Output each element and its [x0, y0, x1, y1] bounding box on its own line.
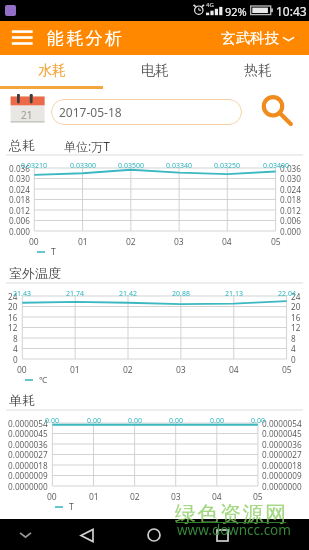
staticText: 00 [17, 364, 27, 375]
staticText: 0.00 [251, 416, 265, 425]
staticText: 0.0000000 [8, 481, 48, 492]
staticText: 21.74 [66, 289, 84, 298]
staticText: 4 [291, 343, 296, 354]
staticText: 0.00 [169, 416, 183, 425]
staticText: 0.03210 [21, 161, 47, 170]
staticText: 12 [8, 322, 18, 333]
staticText: 0.006 [280, 215, 301, 226]
staticText: 0.0000009 [262, 470, 302, 481]
staticText: 05 [282, 364, 292, 375]
staticText: 电耗 [141, 62, 169, 80]
staticText: 01 [89, 491, 99, 502]
staticText: 04 [212, 491, 222, 502]
staticText: 热耗 [244, 62, 272, 80]
staticText: 0.030 [280, 173, 301, 184]
staticText: 能耗分析 [47, 28, 125, 49]
staticText: 05 [271, 236, 281, 247]
staticText: 2017-05-18 [59, 104, 122, 120]
staticText: 02 [123, 364, 133, 375]
staticText: 04 [229, 364, 239, 375]
staticText: 单耗 [9, 392, 35, 408]
staticText: 0.024 [9, 184, 30, 195]
staticText: 0.018 [9, 194, 30, 205]
button[interactable]: 热耗 [206, 55, 309, 86]
staticText: 02 [130, 491, 140, 502]
staticText: 4 [13, 343, 18, 354]
staticText: 24 [8, 291, 18, 302]
staticText: 0.0000018 [8, 460, 48, 471]
staticText: 0.03300 [70, 161, 96, 170]
button[interactable]: 玄武科技 [221, 29, 294, 47]
staticText: 16 [8, 312, 18, 323]
staticText: 总耗 [9, 137, 35, 153]
button[interactable]: Menu [6, 21, 38, 55]
staticText: 0.03400 [263, 161, 289, 170]
staticText: 04 [222, 236, 232, 247]
button[interactable]: Hide keyboard [12, 522, 38, 548]
staticText: 0.036 [280, 163, 301, 174]
staticText: 0.018 [280, 194, 301, 205]
staticText: 21 [21, 108, 33, 122]
staticText: 单位:万T [64, 138, 110, 154]
staticText: 0 [291, 354, 296, 365]
staticText: 10:43 [276, 3, 307, 19]
staticText: 0.00 [128, 416, 142, 425]
staticText: 0.012 [9, 205, 30, 216]
staticText: 0.0000018 [262, 460, 302, 471]
staticText: 0.012 [280, 205, 301, 216]
staticText: 12 [291, 322, 301, 333]
staticText: 8 [291, 333, 296, 344]
staticText: T [69, 501, 74, 513]
staticText: 0.0000045 [8, 428, 48, 439]
button[interactable]: 电耗 [103, 55, 206, 86]
staticText: 21.43 [13, 289, 31, 298]
staticText: 03 [171, 491, 181, 502]
staticText: 0.0000000 [262, 481, 302, 492]
staticText: 0.03500 [118, 161, 144, 170]
staticText: 0.0000027 [262, 449, 302, 460]
staticText: T [51, 246, 56, 258]
staticText: 0.000 [280, 226, 301, 237]
staticText: 01 [70, 364, 80, 375]
button[interactable]: Recent apps [209, 522, 235, 548]
staticText: 玄武科技 [221, 29, 279, 47]
staticText: 0.03250 [214, 161, 240, 170]
staticText: 20 [291, 301, 301, 312]
staticText: 0.006 [9, 215, 30, 226]
staticText: 4G [206, 1, 214, 9]
button[interactable]: Back [74, 522, 100, 548]
staticText: 0.00 [45, 416, 59, 425]
staticText: 0.0000054 [262, 418, 302, 429]
staticText: 8 [13, 333, 18, 344]
staticText: 室外温度 [9, 265, 61, 281]
staticText: 0.0000045 [262, 428, 302, 439]
staticText: 0.0000054 [8, 418, 48, 429]
staticText: 21.42 [119, 289, 137, 298]
button[interactable]: 水耗 [0, 55, 103, 86]
staticText: 0.030 [9, 173, 30, 184]
staticText: 水耗 [38, 62, 66, 80]
staticText: 0.000 [9, 226, 30, 237]
staticText: 0 [13, 354, 18, 365]
staticText: 00 [47, 491, 57, 502]
button[interactable]: 2017-05-18 [51, 99, 242, 125]
staticText: 22.04 [278, 289, 296, 298]
staticText: 20.88 [172, 289, 190, 298]
staticText: 0.036 [9, 163, 30, 174]
button[interactable]: Search [256, 92, 294, 128]
button[interactable]: Pick date [10, 94, 45, 124]
staticText: 03 [174, 236, 184, 247]
staticText: 01 [78, 236, 88, 247]
staticText: 0.03340 [166, 161, 192, 170]
staticText: 0.00 [87, 416, 101, 425]
staticText: 0.00 [210, 416, 224, 425]
staticText: 03 [176, 364, 186, 375]
staticText: 0.0000036 [262, 439, 302, 450]
button[interactable]: Home [141, 522, 167, 548]
staticText: www.downcc.com [177, 521, 291, 539]
staticText: 0.0000027 [8, 449, 48, 460]
staticText: 0.0000009 [8, 470, 48, 481]
staticText: 02 [126, 236, 136, 247]
staticText: 0.0000036 [8, 439, 48, 450]
staticText: 05 [253, 491, 263, 502]
